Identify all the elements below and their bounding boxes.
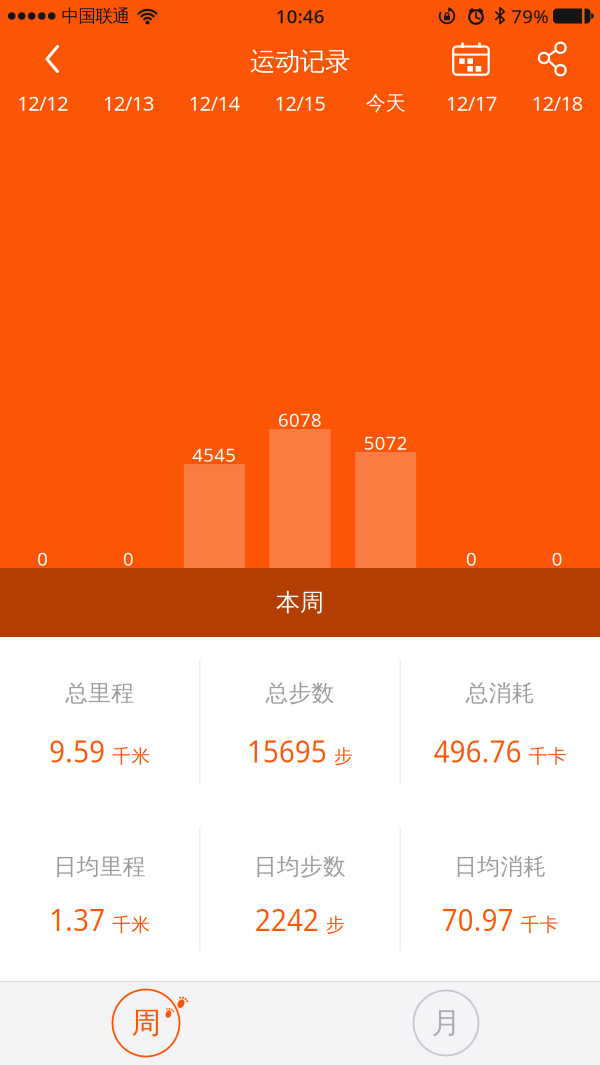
staticText: 中国联通 — [61, 5, 129, 27]
staticText: 70.97 — [442, 898, 514, 940]
button[interactable] — [538, 31, 600, 86]
staticText: 日均步数 — [254, 853, 346, 880]
button[interactable] — [452, 31, 538, 87]
button[interactable]: 今天 — [343, 86, 429, 120]
staticText: 12/15 — [274, 90, 325, 116]
staticText: 2242 — [255, 898, 319, 940]
button[interactable]: 12/15 — [257, 86, 343, 120]
staticText: 日均消耗 — [454, 853, 546, 880]
staticText: 千米 — [112, 913, 150, 936]
staticText: 496.76 — [434, 729, 522, 772]
staticText: 12/17 — [446, 90, 497, 116]
staticText: 千卡 — [521, 913, 559, 936]
staticText: 6078 — [278, 407, 322, 432]
button[interactable]: 12/13 — [86, 86, 171, 120]
staticText: 0 — [466, 546, 477, 571]
staticText: 15695 — [247, 729, 327, 772]
staticText: 12/14 — [189, 90, 240, 116]
staticText: 步 — [334, 745, 353, 768]
staticText: 日均里程 — [54, 853, 146, 880]
staticText: 总里程 — [65, 679, 134, 707]
staticText: 千卡 — [529, 745, 567, 768]
staticText: 周 — [131, 1005, 160, 1041]
staticText: 总步数 — [265, 679, 334, 707]
staticText: 12/13 — [103, 90, 154, 116]
staticText: 本周 — [276, 588, 324, 617]
staticText: 步 — [326, 913, 345, 936]
staticText: 运动记录 — [250, 46, 350, 77]
button[interactable]: 月 — [300, 981, 600, 1065]
staticText: 0 — [37, 546, 48, 571]
staticText: 79% — [511, 4, 549, 28]
button[interactable]: 12/17 — [429, 86, 514, 120]
staticText: 0 — [123, 546, 134, 571]
staticText: 月 — [431, 1005, 460, 1041]
staticText: 0 — [552, 546, 563, 571]
staticText: 9.59 — [49, 729, 105, 772]
staticText: 今天 — [366, 91, 406, 115]
button[interactable] — [0, 31, 61, 87]
staticText: 10:46 — [275, 4, 324, 28]
staticText: 12/18 — [532, 90, 583, 116]
staticText: 4545 — [192, 442, 236, 467]
button[interactable]: 12/18 — [514, 86, 600, 120]
staticText: 12/12 — [17, 90, 68, 116]
button[interactable]: 12/12 — [0, 86, 86, 120]
staticText: 总消耗 — [466, 679, 535, 707]
button[interactable]: 12/14 — [171, 86, 257, 120]
staticText: 1.37 — [49, 898, 105, 940]
staticText: 5072 — [364, 430, 408, 455]
staticText: 千米 — [112, 745, 150, 768]
button[interactable]: 周 — [0, 981, 300, 1065]
